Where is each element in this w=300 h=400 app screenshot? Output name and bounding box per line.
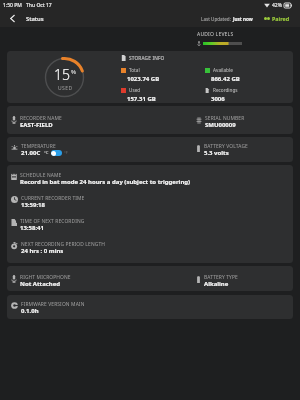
button[interactable]: SCHEDULE NAME xyxy=(11,172,293,187)
staticText: 157.31 GB xyxy=(127,95,156,103)
staticText: STORAGE INFO xyxy=(129,55,165,61)
staticText: 24 hrs : 0 mins xyxy=(21,247,64,255)
staticText: RECORDER NAME xyxy=(20,115,62,122)
staticText: TEMPERATURE xyxy=(21,143,56,150)
staticText: Last Updated: xyxy=(201,16,233,22)
staticText: 13:59:18 xyxy=(21,201,45,209)
button[interactable]: Paired xyxy=(264,15,300,22)
staticText: NEXT RECORDING PERIOD LENGTH xyxy=(21,241,105,248)
button[interactable]: BATTERY VOLTAGE xyxy=(196,143,248,158)
staticText: 1023.74 GB xyxy=(127,75,160,83)
staticText: % xyxy=(71,68,76,76)
staticText: SCHEDULE NAME xyxy=(20,172,62,179)
button[interactable]: RECORDER NAME xyxy=(11,115,62,130)
staticText: USED xyxy=(58,85,73,92)
staticText: 5.3 volts xyxy=(204,149,229,157)
staticText: AUDIO LEVELS xyxy=(197,31,234,38)
staticText: BATTERY VOLTAGE xyxy=(204,143,248,150)
staticText: 42% xyxy=(272,2,282,9)
button[interactable]: SERIAL NUMBER xyxy=(196,115,245,130)
staticText: SERIAL NUMBER xyxy=(205,115,245,122)
staticText: 15 xyxy=(54,65,70,84)
staticText: Paired xyxy=(272,15,290,22)
staticText: Thu Oct 17 xyxy=(26,2,52,9)
button[interactable]: Toggle temperature unit xyxy=(44,150,68,156)
staticText: SMU00009 xyxy=(205,121,236,129)
staticText: CURRENT RECORDER TIME xyxy=(21,195,85,202)
staticText: TIME OF NEXT RECORDING xyxy=(20,218,85,225)
staticText: 0.1.0h xyxy=(21,307,39,315)
staticText: 866.42 GB xyxy=(211,75,240,83)
staticText: 21.00C xyxy=(21,149,41,157)
staticText: RIGHT MICROPHONE xyxy=(20,274,71,281)
staticText: Total xyxy=(129,67,140,73)
button[interactable]: RIGHT MICROPHONE xyxy=(11,274,71,289)
staticText: 13:58:41 xyxy=(20,224,44,232)
staticText: Alkaline xyxy=(204,280,229,288)
staticText: 1:50 PM xyxy=(3,2,22,9)
staticText: °C xyxy=(44,150,49,156)
staticText: Just now xyxy=(233,16,253,22)
button[interactable]: TIME OF NEXT RECORDING xyxy=(11,218,293,233)
staticText: FIRMWARE VERSION MAIN xyxy=(21,301,85,308)
button[interactable]: CURRENT RECORDER TIME xyxy=(11,195,293,210)
staticText: Available xyxy=(213,67,233,73)
button[interactable]: BATTERY TYPE xyxy=(196,274,238,289)
staticText: Not Attached xyxy=(20,280,61,288)
button[interactable]: FIRMWARE VERSION MAIN xyxy=(11,301,85,316)
staticText: 3006 xyxy=(211,95,225,103)
staticText: Recordings xyxy=(213,87,238,93)
button[interactable]: NEXT RECORDING PERIOD LENGTH xyxy=(11,241,293,256)
staticText: Status xyxy=(26,15,44,23)
staticText: BATTERY TYPE xyxy=(204,274,238,281)
button[interactable]: Back xyxy=(6,11,19,26)
staticText: Used xyxy=(129,87,141,93)
staticText: EAST-FIELD xyxy=(20,121,53,129)
staticText: Record in bat mode 24 hours a day (subje… xyxy=(20,178,191,186)
staticText: °F xyxy=(64,150,68,156)
